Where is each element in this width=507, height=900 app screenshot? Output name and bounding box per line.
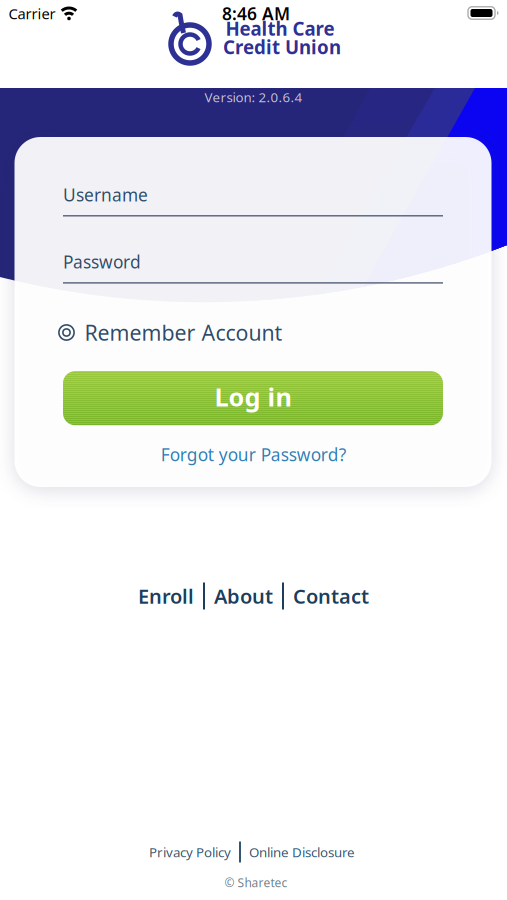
staticText: Password [63,250,141,273]
button[interactable]: Contact [293,583,369,609]
staticText: 8:46 AM [222,2,290,25]
staticText: Version: 2.0.6.4 [204,88,302,106]
staticText: Contact [293,583,369,609]
staticText: Remember Account [84,318,282,347]
staticText: © Sharetec [224,874,287,890]
staticText: Carrier [8,4,55,23]
staticText: Username [63,183,148,206]
button[interactable]: Log in [63,371,443,425]
button[interactable]: About [214,583,273,609]
button[interactable]: Forgot your Password? [161,443,347,466]
staticText: Online Disclosure [249,843,355,861]
staticText: Health Care [225,16,334,41]
button[interactable]: Remember Account [57,318,282,347]
staticText: Privacy Policy [149,843,231,861]
button[interactable]: Privacy Policy [149,843,231,861]
button[interactable]: Online Disclosure [249,843,355,861]
staticText: About [214,583,273,609]
button[interactable]: Username [63,183,443,216]
staticText: Forgot your Password? [161,443,347,466]
staticText: Credit Union [223,35,341,59]
button[interactable]: Enroll [138,583,194,609]
staticText: Log in [214,380,291,413]
button[interactable]: Password [63,250,443,283]
staticText: Enroll [138,583,194,609]
